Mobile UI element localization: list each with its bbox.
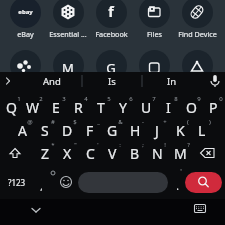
button[interactable]: Is [82,72,142,90]
staticText: * [51,141,55,149]
button[interactable] [3,142,27,164]
staticText: H [130,121,141,140]
staticText: And [43,75,61,88]
button[interactable]: G [101,119,123,141]
staticText: Files [147,29,162,39]
button[interactable] [78,172,168,193]
staticText: ?123 [8,177,26,188]
button[interactable]: And [22,72,82,90]
button[interactable] [193,203,207,214]
button[interactable]: T [90,96,112,118]
staticText: R [74,98,83,117]
staticText: D [62,121,73,140]
staticText: : [119,141,121,149]
button[interactable]: I [157,96,179,118]
button[interactable]: Z [34,142,56,164]
button[interactable]: U [135,96,157,118]
button[interactable] [139,50,170,81]
button[interactable]: Q [0,96,22,118]
button[interactable] [56,171,76,193]
staticText: 5 [107,95,111,103]
button[interactable] [139,0,170,28]
button[interactable]: A [11,119,33,141]
staticText: & [118,118,123,126]
button[interactable] [10,0,41,28]
button[interactable]: V [101,142,123,164]
staticText: G [107,121,118,140]
staticText: 7 [152,95,156,103]
staticText: ; [142,141,144,149]
button[interactable] [196,142,220,164]
staticText: 4 [84,95,88,103]
staticText: _ [97,118,100,126]
staticText: Facebook [95,29,128,39]
button[interactable] [182,50,213,81]
staticText: In [167,75,177,88]
button[interactable]: D [56,119,78,141]
button[interactable]: In [142,72,202,90]
staticText: J [155,121,159,140]
staticText: ebay [18,8,33,16]
staticText: f [108,2,114,21]
button[interactable]: R [67,96,89,118]
button[interactable]: L [191,119,213,141]
staticText: 2 [39,95,43,103]
staticText: eBay [17,29,34,39]
staticText: " [74,141,77,149]
staticText: $ [73,118,77,126]
button[interactable] [96,0,127,28]
staticText: 8 [174,95,178,103]
staticText: ? [187,141,190,149]
staticText: U [141,98,152,117]
button[interactable] [182,0,213,28]
staticText: Z [41,144,50,163]
staticText: ( [187,118,189,126]
staticText: W [26,98,40,117]
button[interactable]: X [56,142,78,164]
staticText: P [209,98,218,117]
staticText: V [108,144,117,163]
button[interactable]: E [45,96,67,118]
staticText: , [40,180,43,192]
staticText: 0 [219,95,223,103]
staticText: M [62,59,74,77]
staticText: @ [27,118,33,126]
button[interactable] [53,50,84,81]
staticText: Find Device [178,29,217,39]
button[interactable]: F [79,119,101,141]
staticText: 9 [197,95,201,103]
staticText: L [198,121,206,140]
button[interactable] [53,0,84,28]
staticText: 1 [17,95,21,103]
button[interactable]: P [202,96,224,118]
button[interactable]: B [124,142,146,164]
button[interactable]: J [146,119,168,141]
staticText: # [51,118,55,126]
staticText: ' [97,141,99,149]
staticText: Is [108,75,116,88]
button[interactable] [10,50,41,81]
staticText: ) [209,118,211,126]
staticText: B [130,144,140,163]
staticText: T [97,98,105,117]
button[interactable]: H [124,119,146,141]
button[interactable] [185,172,222,193]
staticText: K [176,121,185,140]
button[interactable]: ?123 [3,171,31,193]
button[interactable]: Y [112,96,134,118]
button[interactable]: W [22,96,44,118]
staticText: . [176,179,179,193]
button[interactable]: K [169,119,191,141]
staticText: O [186,98,197,117]
staticText: N [152,144,163,163]
staticText: A [18,121,27,140]
staticText: Y [119,98,127,117]
button[interactable]: S [34,119,56,141]
staticText: + [163,118,167,126]
staticText: 6 [129,95,133,103]
button[interactable]: C [79,142,101,164]
button[interactable] [96,50,127,81]
button[interactable]: M [169,142,191,164]
button[interactable]: O [180,96,202,118]
button[interactable]: N [146,142,168,164]
